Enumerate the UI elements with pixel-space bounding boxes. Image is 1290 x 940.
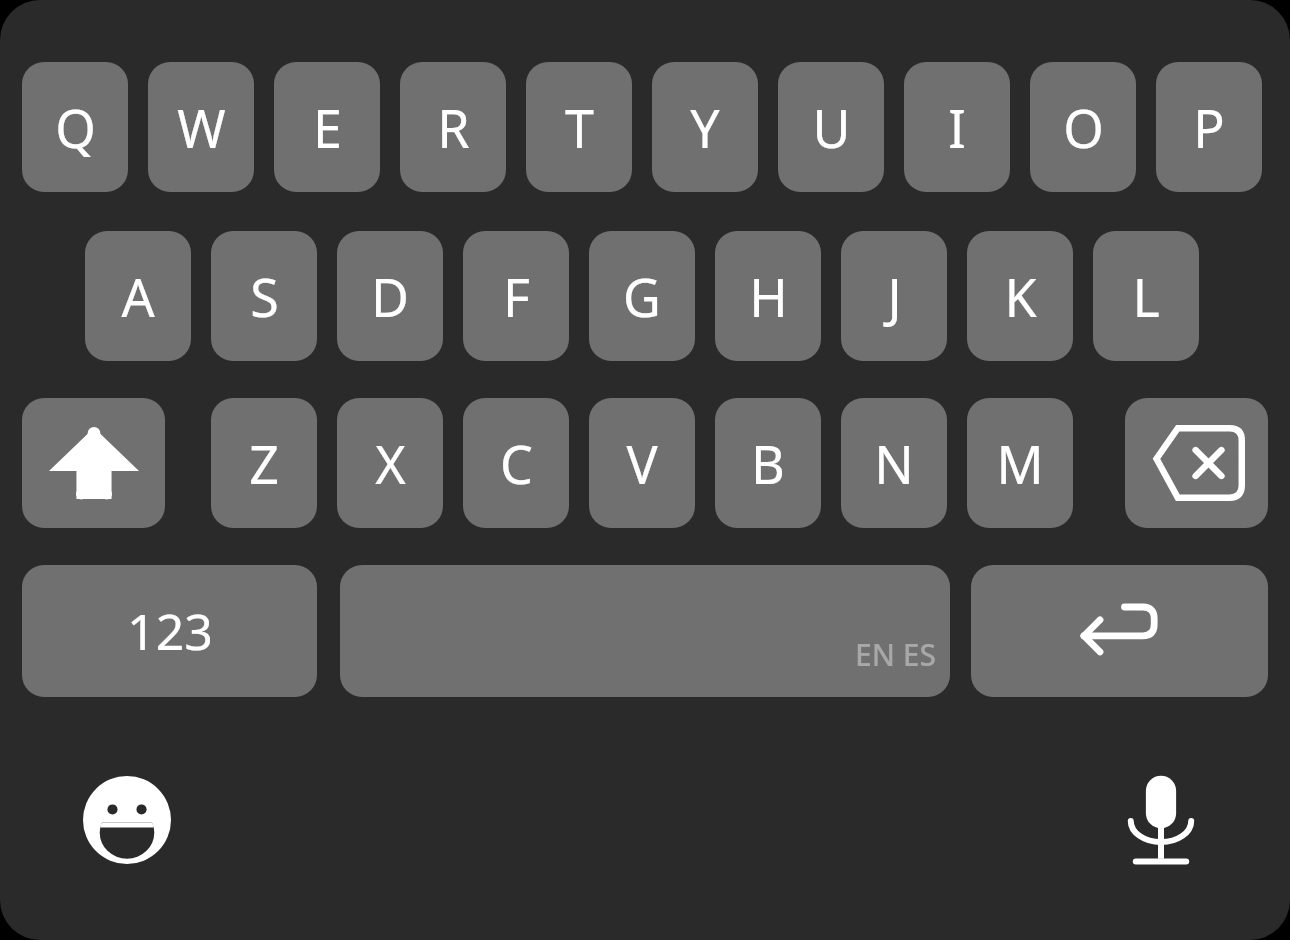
staticText: J (887, 261, 902, 332)
button[interactable]: J (841, 231, 947, 361)
button[interactable]: I (904, 62, 1010, 192)
button[interactable]: Emoji (72, 765, 182, 875)
button[interactable]: Space (340, 565, 950, 697)
button[interactable]: Shift (22, 398, 165, 528)
staticText: L (1132, 261, 1160, 332)
button[interactable]: L (1093, 231, 1199, 361)
button[interactable]: X (337, 398, 443, 528)
staticText: F (503, 261, 530, 332)
staticText: I (948, 92, 966, 163)
staticText: A (121, 261, 155, 332)
staticText: H (749, 261, 788, 332)
button[interactable]: E (274, 62, 380, 192)
staticText: R (437, 92, 470, 163)
button[interactable]: D (337, 231, 443, 361)
button[interactable]: B (715, 398, 821, 528)
button[interactable]: Enter (971, 565, 1268, 697)
staticText: Z (249, 428, 279, 499)
staticText: M (996, 428, 1044, 499)
button[interactable]: H (715, 231, 821, 361)
staticText: 123 (127, 597, 213, 665)
button[interactable]: T (526, 62, 632, 192)
button[interactable]: K (967, 231, 1073, 361)
button[interactable]: U (778, 62, 884, 192)
button[interactable]: G (589, 231, 695, 361)
button[interactable]: N (841, 398, 947, 528)
staticText: V (626, 428, 658, 499)
staticText: W (177, 92, 226, 163)
button[interactable]: Voice input (1106, 765, 1216, 875)
button[interactable]: Backspace (1125, 398, 1268, 528)
staticText: EN ES (855, 634, 936, 675)
staticText: T (565, 92, 594, 163)
staticText: O (1063, 92, 1104, 163)
button[interactable]: W (148, 62, 254, 192)
button[interactable]: R (400, 62, 506, 192)
staticText: B (751, 428, 785, 499)
staticText: C (500, 428, 533, 499)
staticText: P (1193, 92, 1225, 163)
button[interactable]: O (1030, 62, 1136, 192)
button[interactable]: V (589, 398, 695, 528)
staticText: Y (690, 92, 720, 163)
staticText: D (371, 261, 409, 332)
staticText: G (623, 261, 661, 332)
button[interactable]: M (967, 398, 1073, 528)
button[interactable]: F (463, 231, 569, 361)
button[interactable]: Q (22, 62, 128, 192)
staticText: Q (55, 92, 96, 163)
staticText: X (375, 428, 406, 499)
button[interactable]: Y (652, 62, 758, 192)
staticText: S (250, 261, 279, 332)
button[interactable]: A (85, 231, 191, 361)
staticText: K (1004, 261, 1037, 332)
staticText: E (313, 92, 342, 163)
button[interactable]: S (211, 231, 317, 361)
staticText: N (874, 428, 914, 499)
staticText: U (812, 92, 851, 163)
button[interactable]: 123 (22, 565, 317, 697)
button[interactable]: C (463, 398, 569, 528)
button[interactable]: P (1156, 62, 1262, 192)
button[interactable]: Z (211, 398, 317, 528)
